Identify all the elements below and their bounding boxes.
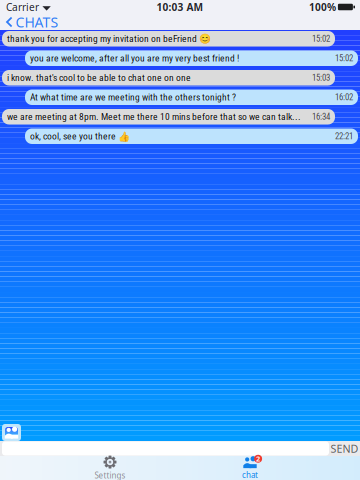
- staticText: Settings: [94, 470, 125, 480]
- button[interactable]: SEND: [329, 441, 360, 456]
- staticText: 16:02: [335, 92, 353, 102]
- staticText: 16:34: [312, 112, 330, 122]
- staticText: 15:03: [312, 73, 330, 83]
- staticText: CHATS: [16, 12, 59, 32]
- staticText: 15:02: [312, 34, 330, 44]
- button[interactable]: Settings: [80, 456, 140, 480]
- staticText: ok, cool, see you there 👍: [30, 131, 130, 142]
- staticText: 22:21: [335, 131, 353, 141]
- staticText: Carrier: [6, 0, 39, 14]
- staticText: we are meeting at 8pm. Meet me there 10 …: [7, 111, 301, 122]
- staticText: 100%: [309, 0, 336, 14]
- staticText: i know. that's cool to be able to chat o…: [7, 72, 191, 83]
- staticText: 15:02: [335, 53, 353, 63]
- staticText: 10:03 AM: [157, 0, 204, 14]
- staticText: thank you for accepting my invitation on…: [7, 33, 211, 44]
- staticText: SEND: [330, 441, 358, 456]
- staticText: chat: [242, 470, 258, 480]
- button[interactable]: 2: [220, 456, 280, 480]
- staticText: 2: [256, 454, 260, 464]
- staticText: At what time are we meeting with the oth…: [30, 92, 236, 103]
- button[interactable]: CHATS: [0, 14, 65, 30]
- staticText: you are welcome, after all you are my ve…: [30, 53, 239, 64]
